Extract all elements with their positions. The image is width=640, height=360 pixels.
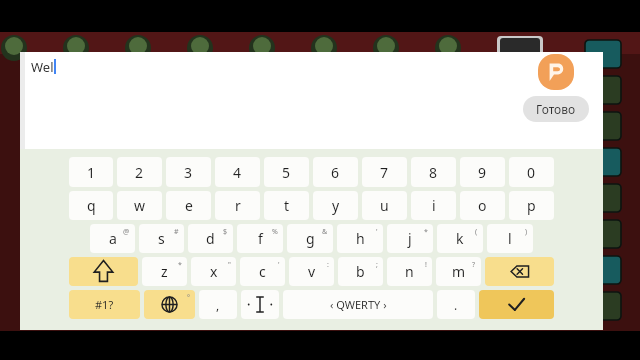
staticText: e <box>185 196 193 215</box>
button[interactable]: 2 <box>117 157 162 187</box>
button[interactable]: s <box>139 224 184 253</box>
staticText: v <box>308 262 316 281</box>
staticText: " <box>228 260 231 270</box>
button[interactable]: q <box>69 191 113 220</box>
button[interactable]: 0 <box>509 157 554 187</box>
button[interactable]: Shift <box>69 257 138 286</box>
button[interactable]: o <box>460 191 505 220</box>
button[interactable]: 7 <box>362 157 407 187</box>
staticText: n <box>405 262 414 281</box>
button[interactable]: #1? <box>69 290 140 319</box>
staticText: 1 <box>87 163 96 182</box>
button[interactable]: e <box>166 191 211 220</box>
button[interactable]: y <box>313 191 358 220</box>
button[interactable]: 4 <box>215 157 260 187</box>
button[interactable]: 1 <box>69 157 113 187</box>
button[interactable]: i <box>411 191 456 220</box>
staticText: ' <box>278 260 280 270</box>
staticText: b <box>356 262 365 281</box>
staticText: ‹ QWERTY › <box>330 297 387 312</box>
button[interactable]: , <box>199 290 237 319</box>
button[interactable]: Account <box>538 54 574 90</box>
staticText: 4 <box>233 163 242 182</box>
staticText: r <box>235 196 241 215</box>
staticText: p <box>527 196 536 215</box>
staticText: z <box>161 262 168 281</box>
button[interactable]: h <box>337 224 383 253</box>
staticText: @ <box>123 227 130 237</box>
staticText: c <box>259 262 266 281</box>
staticText: j <box>408 229 412 248</box>
staticText: % <box>272 227 278 237</box>
staticText: # <box>174 227 179 237</box>
button[interactable]: d <box>188 224 233 253</box>
staticText: h <box>356 229 365 248</box>
staticText: : <box>327 260 329 270</box>
button[interactable]: u <box>362 191 407 220</box>
button[interactable]: 3 <box>166 157 211 187</box>
button[interactable]: t <box>264 191 309 220</box>
button[interactable]: 6 <box>313 157 358 187</box>
button[interactable]: k <box>437 224 483 253</box>
button[interactable]: 9 <box>460 157 505 187</box>
staticText: t <box>284 196 290 215</box>
staticText: 8 <box>429 163 438 182</box>
staticText: ; <box>376 260 378 270</box>
button[interactable]: m <box>436 257 481 286</box>
staticText: 7 <box>380 163 389 182</box>
staticText: o <box>478 196 487 215</box>
button[interactable]: ‹ QWERTY › <box>283 290 433 319</box>
staticText: 6 <box>331 163 340 182</box>
staticText: a <box>109 229 117 248</box>
staticText: #1? <box>95 297 114 312</box>
button[interactable]: g <box>287 224 333 253</box>
staticText: q <box>87 196 96 215</box>
staticText: ! <box>425 260 427 270</box>
button[interactable]: x <box>191 257 236 286</box>
staticText: 2 <box>135 163 144 182</box>
staticText: ? <box>472 260 476 270</box>
button[interactable]: n <box>387 257 432 286</box>
staticText: g <box>306 229 315 248</box>
staticText: s <box>158 229 165 248</box>
staticText: Wel <box>31 58 54 76</box>
button[interactable]: p <box>509 191 554 220</box>
staticText: ° <box>187 293 190 303</box>
button[interactable]: Delete <box>485 257 554 286</box>
button[interactable]: Done <box>479 290 554 319</box>
staticText: * <box>178 260 182 270</box>
button[interactable]: Cursor <box>241 290 279 319</box>
staticText: u <box>380 196 389 215</box>
staticText: $ <box>223 227 228 237</box>
button[interactable]: a <box>90 224 135 253</box>
button[interactable]: f <box>237 224 283 253</box>
staticText: ) <box>525 227 528 237</box>
button[interactable]: 5 <box>264 157 309 187</box>
button[interactable]: l <box>487 224 533 253</box>
staticText: f <box>258 229 263 248</box>
staticText: y <box>332 196 340 215</box>
button[interactable]: Готово <box>523 96 589 122</box>
button[interactable]: 8 <box>411 157 456 187</box>
staticText: d <box>206 229 215 248</box>
button[interactable]: r <box>215 191 260 220</box>
staticText: ' <box>376 227 378 237</box>
staticText: w <box>134 196 146 215</box>
button[interactable]: Change language <box>144 290 195 319</box>
staticText: . <box>454 297 458 313</box>
staticText: m <box>452 262 466 281</box>
staticText: 9 <box>478 163 487 182</box>
button[interactable]: . <box>437 290 475 319</box>
button[interactable]: j <box>387 224 433 253</box>
button[interactable]: b <box>338 257 383 286</box>
staticText: k <box>456 229 464 248</box>
staticText: ( <box>475 227 478 237</box>
button[interactable]: z <box>142 257 187 286</box>
staticText: , <box>216 297 220 313</box>
staticText: 5 <box>282 163 291 182</box>
staticText: 3 <box>184 163 193 182</box>
button[interactable]: w <box>117 191 162 220</box>
button[interactable]: c <box>240 257 285 286</box>
staticText: x <box>210 262 218 281</box>
button[interactable]: v <box>289 257 334 286</box>
